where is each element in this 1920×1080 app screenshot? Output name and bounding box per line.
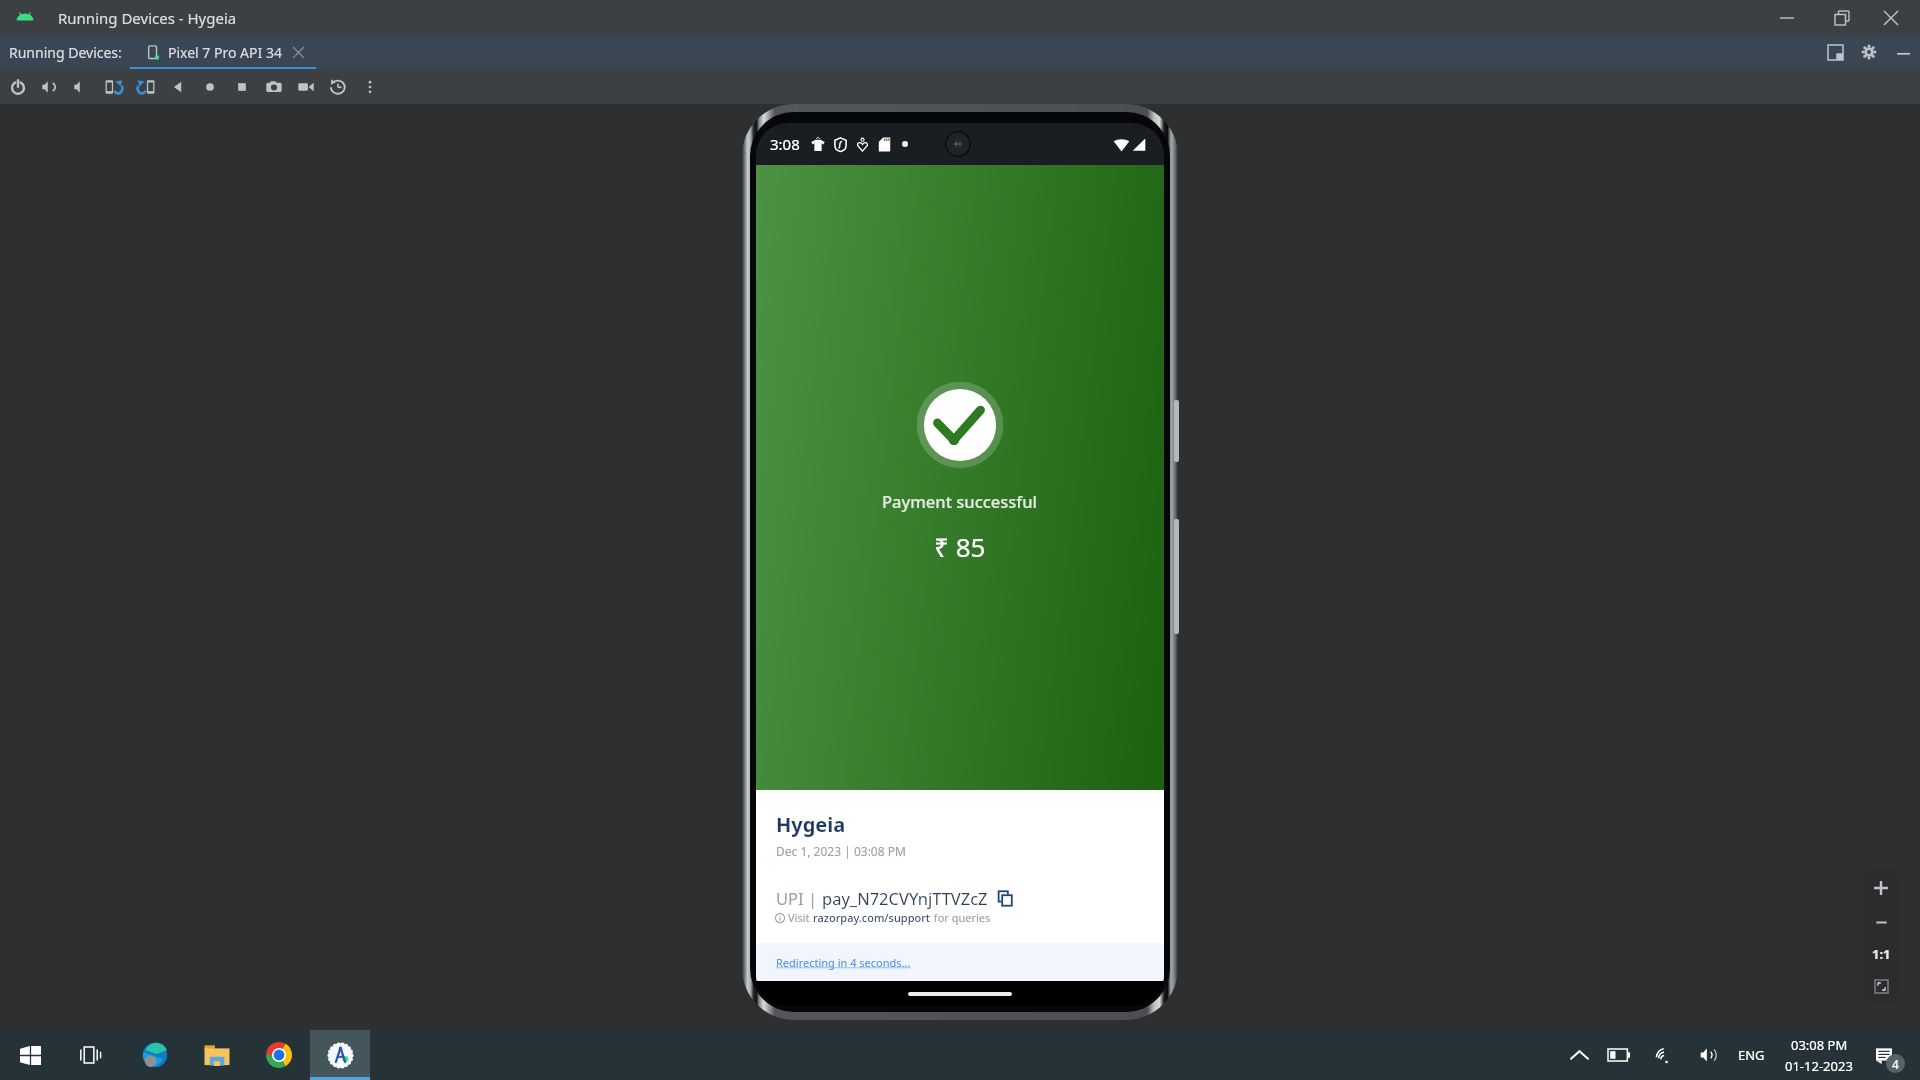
staticText: UPI | [776, 887, 822, 909]
button[interactable]: Restore [1816, 0, 1868, 35]
staticText: Dec 1, 2023 | 03:08 PM [776, 843, 906, 859]
staticText: 03:08 PM [1791, 1036, 1848, 1054]
button[interactable]: Redirecting in 4 seconds... [756, 943, 1164, 981]
button[interactable]: Pixel 7 Pro API 34 [130, 35, 316, 69]
staticText: Running Devices: [9, 43, 122, 62]
button[interactable]: More options [354, 70, 386, 104]
staticText: pay_N72CVYnjTTVZcZ [822, 887, 988, 909]
staticText: ₹ 85 [934, 529, 986, 564]
button[interactable]: Volume down [66, 70, 98, 104]
button[interactable]: Show hidden icons [1559, 1030, 1599, 1080]
button[interactable]: Volume [1689, 1030, 1729, 1080]
button[interactable]: Overview [226, 70, 258, 104]
button[interactable]: Language [1729, 1030, 1773, 1080]
staticText: 4 [1892, 1056, 1899, 1072]
button[interactable]: Hide [1886, 35, 1920, 69]
button[interactable]: Record screen [290, 70, 322, 104]
button[interactable]: Network [1644, 1030, 1684, 1080]
staticText: Pixel 7 Pro API 34 [168, 43, 282, 62]
button[interactable]: Battery [1599, 1030, 1639, 1080]
button[interactable]: Split window [1818, 35, 1852, 69]
button[interactable]: Task view [68, 1030, 112, 1080]
staticText: for queries [931, 910, 991, 925]
button[interactable]: Rotate right [130, 70, 162, 104]
staticText: 3:08 [770, 134, 800, 154]
staticText: Payment successful [882, 490, 1038, 512]
button[interactable]: Minimize [1758, 0, 1816, 35]
staticText: razorpay.com/support [813, 910, 931, 925]
button[interactable]: Power [2, 70, 34, 104]
button[interactable]: Zoom out [1864, 907, 1898, 938]
button[interactable]: Home [194, 70, 226, 104]
button[interactable]: History [322, 70, 354, 104]
button[interactable]: Rotate left [98, 70, 130, 104]
staticText: ENG [1738, 1046, 1765, 1064]
button[interactable]: Settings [1852, 35, 1886, 69]
staticText: Redirecting in 4 seconds... [776, 955, 911, 970]
staticText: 01-12-2023 [1785, 1057, 1853, 1075]
button[interactable]: Microsoft Edge [133, 1030, 177, 1080]
button[interactable]: Volume up [34, 70, 66, 104]
button[interactable]: 03:08 PM [1785, 1030, 1853, 1080]
button[interactable]: Zoom to fit [1864, 970, 1898, 1002]
staticText: Running Devices - Hygeia [58, 8, 237, 28]
button[interactable]: File Explorer [195, 1030, 239, 1080]
button[interactable]: Back [162, 70, 194, 104]
button[interactable]: Screenshot [258, 70, 290, 104]
staticText: Visit [788, 910, 813, 925]
button[interactable]: Google Chrome [257, 1030, 301, 1080]
button[interactable]: Zoom to actual size [1864, 938, 1898, 970]
button[interactable]: Notifications [1865, 1030, 1905, 1080]
button[interactable]: Copy payment id [998, 891, 1013, 906]
button[interactable]: Close [1868, 0, 1914, 35]
button[interactable]: Zoom in [1864, 869, 1898, 907]
button[interactable]: Android Studio [310, 1030, 370, 1080]
staticText: Hygeia [776, 811, 846, 838]
staticText: 1:1 [1872, 945, 1891, 963]
button[interactable]: Start [8, 1030, 52, 1080]
